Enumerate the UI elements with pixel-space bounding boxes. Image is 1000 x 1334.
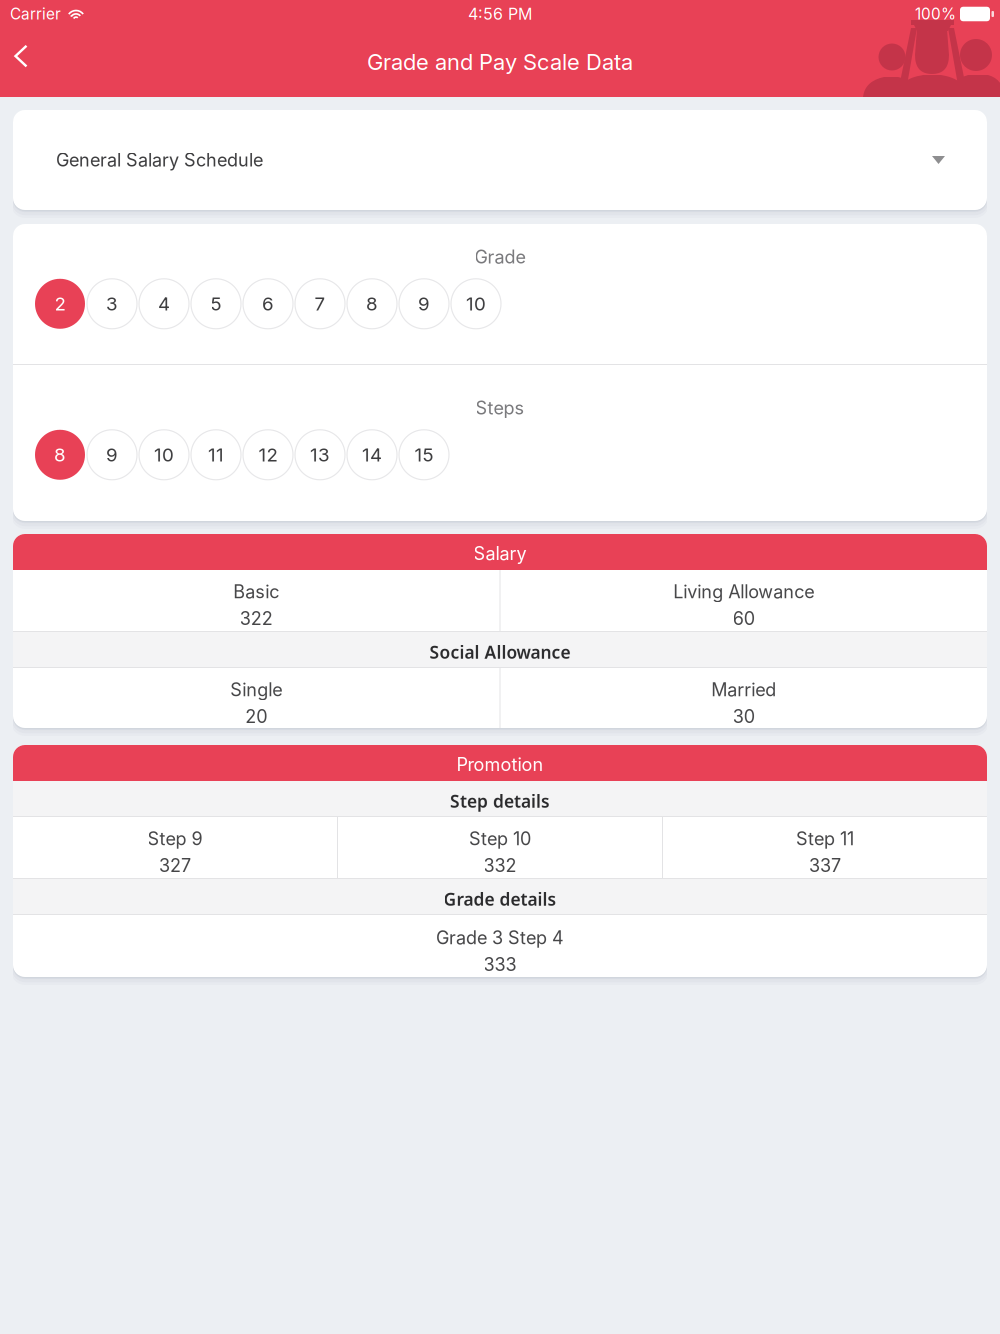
button[interactable]: 13 [294, 429, 346, 481]
staticText: 7 [314, 292, 325, 315]
staticText: Salary [473, 543, 526, 564]
staticText: 8 [54, 443, 66, 466]
staticText: Grade [474, 246, 525, 268]
button[interactable]: 2 [34, 278, 86, 330]
button[interactable]: 12 [242, 429, 294, 481]
staticText: 337 [809, 854, 841, 876]
staticText: 327 [159, 854, 191, 876]
staticText: 3 [106, 292, 118, 315]
staticText: 20 [245, 705, 267, 727]
button[interactable]: 8 [34, 429, 86, 481]
button[interactable]: Back [0, 36, 46, 87]
staticText: 11 [208, 443, 224, 466]
staticText: General Salary Schedule [56, 149, 263, 171]
staticText: 322 [240, 607, 273, 629]
staticText: 30 [733, 705, 755, 727]
button[interactable]: 3 [86, 278, 138, 330]
staticText: Promotion [456, 754, 543, 775]
button[interactable]: 5 [190, 278, 242, 330]
staticText: 100% [915, 5, 956, 23]
button[interactable]: 10 [450, 278, 502, 330]
staticText: 15 [414, 443, 433, 466]
staticText: 10 [466, 292, 486, 315]
staticText: 5 [210, 292, 221, 315]
button[interactable]: 10 [138, 429, 190, 481]
staticText: Married [711, 679, 776, 700]
button[interactable]: 9 [86, 429, 138, 481]
staticText: Step 9 [147, 828, 202, 849]
staticText: Grade 3 Step 4 [436, 927, 564, 948]
staticText: Step 10 [469, 828, 531, 849]
staticText: 10 [154, 443, 174, 466]
button[interactable]: General Salary Schedule [13, 110, 987, 210]
staticText: Grade details [443, 887, 556, 910]
staticText: 9 [106, 443, 118, 466]
staticText: Social Allowance [429, 640, 570, 663]
staticText: Steps [475, 397, 524, 419]
button[interactable]: 14 [346, 429, 398, 481]
button[interactable]: 7 [294, 278, 346, 330]
staticText: Step details [450, 789, 550, 812]
staticText: 13 [310, 443, 330, 466]
staticText: 332 [483, 854, 516, 876]
staticText: 8 [366, 292, 378, 315]
staticText: Living Allowance [673, 581, 814, 602]
staticText: Step 11 [796, 828, 854, 849]
staticText: Basic [233, 581, 279, 602]
staticText: 4:56 PM [468, 4, 532, 24]
staticText: 60 [733, 607, 755, 629]
button[interactable]: 15 [398, 429, 450, 481]
button[interactable]: 9 [398, 278, 450, 330]
staticText: 2 [54, 292, 65, 315]
staticText: 12 [258, 443, 277, 466]
button[interactable]: 11 [190, 429, 242, 481]
button[interactable]: 8 [346, 278, 398, 330]
staticText: Single [230, 679, 282, 700]
button[interactable]: 6 [242, 278, 294, 330]
staticText: Grade and Pay Scale Data [367, 49, 633, 75]
staticText: 6 [262, 292, 274, 315]
staticText: 14 [362, 443, 382, 466]
staticText: 4 [158, 292, 170, 315]
staticText: 9 [418, 292, 430, 315]
staticText: Carrier [10, 5, 61, 23]
staticText: 333 [483, 953, 516, 975]
button[interactable]: 4 [138, 278, 190, 330]
